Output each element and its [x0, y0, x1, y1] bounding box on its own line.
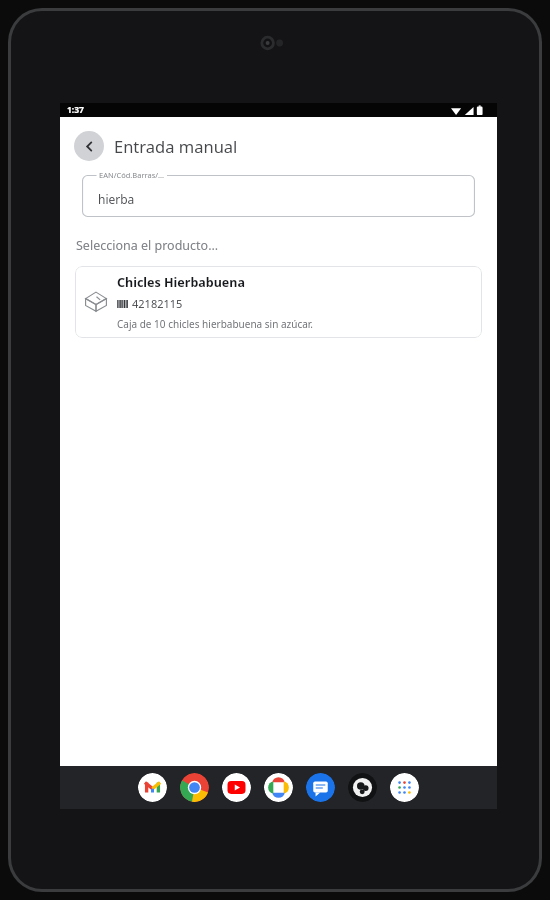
staticText: Selecciona el producto...: [76, 237, 219, 254]
staticText: Chicles Hierbabuena: [117, 274, 245, 291]
staticText: 42182115: [132, 296, 183, 311]
button[interactable]: Chrome: [180, 773, 209, 802]
button[interactable]: All apps: [390, 773, 419, 802]
button[interactable]: Chicles Hierbabuena: [75, 266, 482, 338]
staticText: Caja de 10 chicles hierbabuena sin azúca…: [117, 317, 314, 331]
staticText: Entrada manual: [114, 135, 238, 157]
button[interactable]: Messages: [306, 773, 335, 802]
button[interactable]: Back: [74, 131, 104, 161]
button[interactable]: YouTube: [222, 773, 251, 802]
staticText: 1:37: [67, 104, 84, 116]
staticText: hierba: [98, 191, 135, 207]
button[interactable]: Photos: [264, 773, 293, 802]
button[interactable]: Camera: [348, 773, 377, 802]
button[interactable]: Gmail: [138, 773, 167, 802]
staticText: EAN/Cód.Barras/...: [99, 170, 165, 180]
